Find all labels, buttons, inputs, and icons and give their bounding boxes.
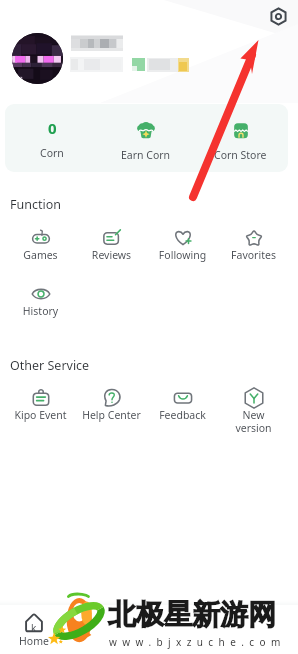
button[interactable]: Corn Store	[193, 104, 288, 172]
button[interactable]: Profile photo	[12, 33, 63, 84]
staticText: Feedback	[147, 408, 218, 422]
staticText: www.bjxzuche.com	[109, 635, 286, 649]
staticText: Function	[10, 196, 61, 213]
button[interactable]: Home	[4, 608, 64, 650]
staticText: Corn	[40, 146, 64, 160]
staticText: Help Center	[76, 408, 147, 422]
button[interactable]: Help Center	[76, 382, 147, 424]
staticText: History	[5, 304, 76, 318]
staticText: New version	[218, 408, 289, 435]
staticText: Kipo Event	[5, 408, 76, 422]
button[interactable]: History	[5, 278, 76, 320]
button[interactable]: Settings	[266, 4, 291, 29]
button[interactable]: Favorites	[218, 222, 289, 264]
button[interactable]: Earn Corn	[99, 104, 193, 172]
button[interactable]: 0	[5, 104, 99, 172]
staticText: Corn Store	[214, 148, 267, 162]
staticText: 北极星新游网	[108, 597, 276, 632]
staticText: Favorites	[218, 248, 289, 262]
button[interactable]: New version	[218, 382, 289, 424]
staticText: Games	[5, 248, 76, 262]
staticText: Reviews	[76, 248, 147, 262]
staticText: Following	[147, 248, 218, 262]
staticText: Earn Corn	[121, 148, 171, 162]
button[interactable]: Following	[147, 222, 218, 264]
button[interactable]: Kipo Event	[5, 382, 76, 424]
button[interactable]: Feedback	[147, 382, 218, 424]
staticText: 0	[48, 118, 57, 138]
button[interactable]: Reviews	[76, 222, 147, 264]
staticText: k	[31, 621, 37, 635]
staticText: Other Service	[10, 357, 90, 374]
staticText: Home	[19, 634, 49, 648]
button[interactable]: Games	[5, 222, 76, 264]
